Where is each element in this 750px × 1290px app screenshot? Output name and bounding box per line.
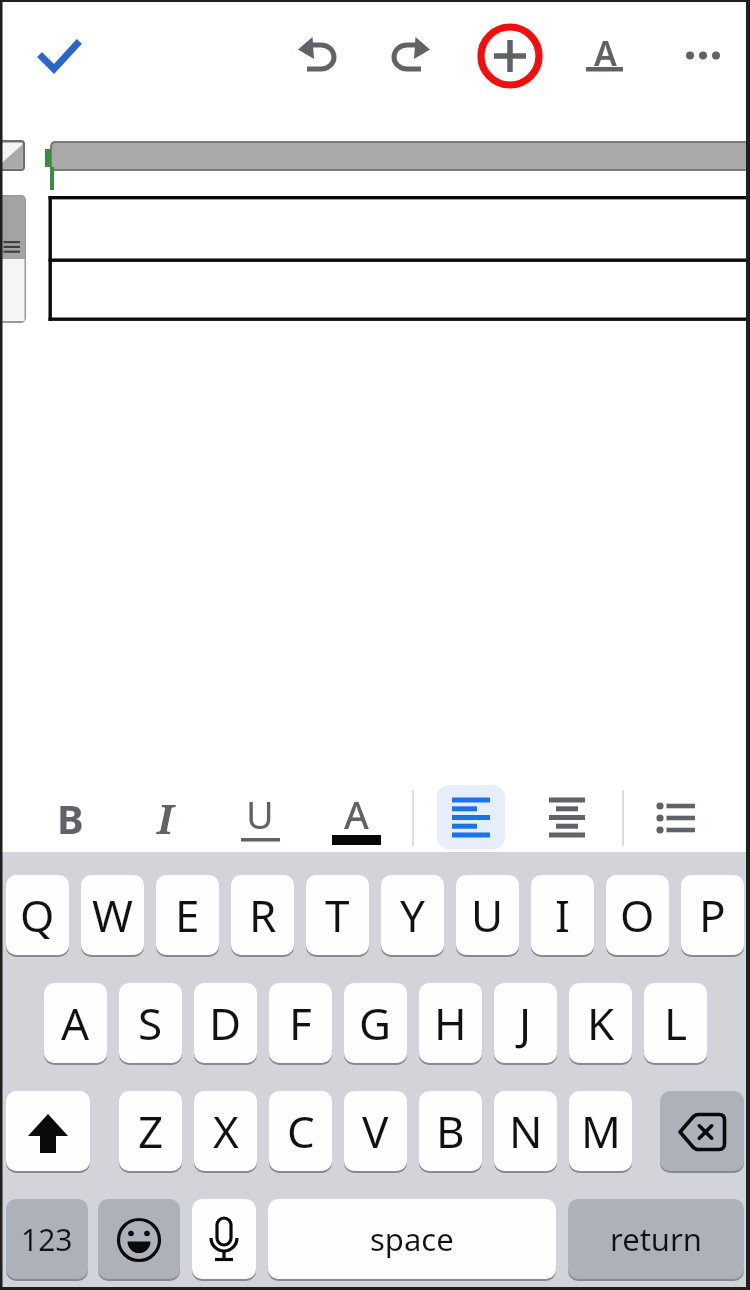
button[interactable]: L [644, 983, 707, 1063]
staticText: Z [138, 1101, 164, 1161]
button[interactable]: F [269, 983, 332, 1063]
staticText: K [587, 993, 615, 1053]
staticText: X [213, 1101, 239, 1161]
button[interactable] [672, 26, 732, 86]
button[interactable] [98, 1199, 180, 1279]
staticText: C [287, 1101, 315, 1161]
button[interactable]: O [606, 875, 669, 955]
button[interactable]: A [575, 26, 635, 86]
staticText: S [138, 993, 163, 1053]
button[interactable]: V [344, 1091, 407, 1171]
button[interactable]: W [81, 875, 144, 955]
staticText: W [92, 885, 133, 945]
button[interactable]: A [324, 786, 388, 850]
button[interactable] [533, 785, 601, 849]
staticText: R [249, 885, 277, 945]
button[interactable]: S [119, 983, 182, 1063]
button[interactable]: P [681, 875, 744, 955]
button[interactable]: N [494, 1091, 557, 1171]
staticText: F [289, 993, 312, 1053]
button[interactable]: I [531, 875, 594, 955]
button[interactable]: G [344, 983, 407, 1063]
button[interactable]: I [133, 786, 197, 850]
button[interactable]: H [419, 983, 482, 1063]
staticText: I [555, 885, 570, 945]
button[interactable]: space [268, 1199, 556, 1279]
button[interactable]: D [194, 983, 257, 1063]
button[interactable] [192, 1199, 256, 1279]
button[interactable]: U [228, 786, 292, 850]
staticText: B [57, 791, 84, 845]
staticText: H [434, 993, 467, 1053]
staticText: A [61, 993, 90, 1053]
button[interactable] [437, 785, 505, 849]
button[interactable]: return [568, 1199, 744, 1279]
button[interactable]: K [569, 983, 632, 1063]
staticText: N [509, 1101, 543, 1161]
staticText: U [471, 885, 504, 945]
button[interactable]: 123 [6, 1199, 88, 1279]
button[interactable] [660, 1091, 744, 1171]
button[interactable] [644, 785, 708, 849]
button[interactable] [382, 25, 440, 85]
button[interactable]: R [231, 875, 294, 955]
staticText: M [581, 1101, 621, 1161]
staticText: E [175, 885, 200, 945]
staticText: P [699, 885, 726, 945]
staticText: T [325, 885, 350, 945]
button[interactable]: J [494, 983, 557, 1063]
staticText: Y [400, 885, 425, 945]
button[interactable]: B [38, 786, 102, 850]
button[interactable]: Y [381, 875, 444, 955]
staticText: O [620, 885, 655, 945]
staticText: I [157, 791, 174, 845]
button[interactable]: C [269, 1091, 332, 1171]
staticText: G [359, 993, 392, 1053]
button[interactable]: X [194, 1091, 257, 1171]
staticText: J [519, 993, 532, 1053]
staticText: Q [20, 885, 55, 945]
staticText: L [664, 993, 688, 1053]
button[interactable] [288, 25, 346, 85]
staticText: return [610, 1218, 702, 1260]
button[interactable]: Q [6, 875, 69, 955]
button[interactable]: Z [119, 1091, 182, 1171]
staticText: V [362, 1101, 389, 1161]
button[interactable]: E [156, 875, 219, 955]
button[interactable] [30, 26, 90, 86]
button[interactable] [477, 23, 543, 89]
button[interactable]: A [44, 983, 107, 1063]
staticText: A [344, 788, 369, 840]
button[interactable]: U [456, 875, 519, 955]
staticText: 123 [21, 1219, 73, 1260]
staticText: A [594, 30, 617, 76]
button[interactable]: B [419, 1091, 482, 1171]
staticText: B [436, 1101, 465, 1161]
staticText: D [209, 993, 242, 1053]
staticText: space [370, 1218, 454, 1260]
staticText: U [246, 788, 274, 840]
button[interactable] [6, 1091, 90, 1171]
button[interactable]: T [306, 875, 369, 955]
button[interactable]: M [569, 1091, 632, 1171]
